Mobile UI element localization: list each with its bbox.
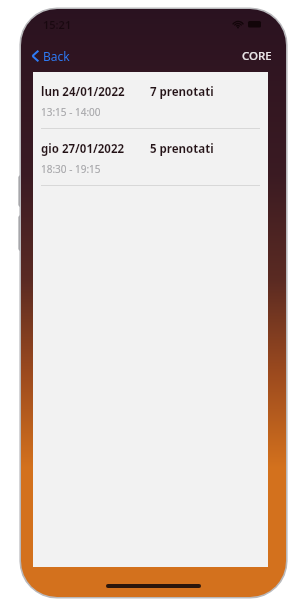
button[interactable]: lun 24/01/2022 xyxy=(33,72,268,129)
staticText: 7 prenotati xyxy=(150,84,260,100)
staticText: CORE xyxy=(242,48,272,64)
staticText: 5 prenotati xyxy=(150,141,260,157)
button[interactable]: CORE xyxy=(238,44,276,68)
staticText: 18:30 - 19:15 xyxy=(41,162,101,176)
staticText: 13:15 - 14:00 xyxy=(41,105,101,119)
button[interactable]: Back xyxy=(26,44,75,68)
staticText: 15:21 xyxy=(43,17,72,32)
button[interactable]: gio 27/01/2022 xyxy=(33,129,268,186)
staticText: lun 24/01/2022 xyxy=(41,84,150,100)
staticText: Back xyxy=(43,48,70,64)
staticText: gio 27/01/2022 xyxy=(41,141,150,157)
